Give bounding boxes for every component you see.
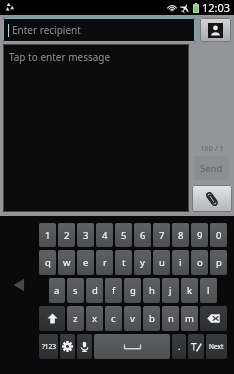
button[interactable]: h [143, 278, 160, 303]
staticText: s [73, 284, 78, 297]
button[interactable]: s [67, 278, 84, 303]
staticText: 1 [45, 229, 51, 242]
button[interactable]: ?123 [39, 334, 58, 359]
button[interactable]: 6 [134, 223, 151, 247]
staticText: 4 [102, 229, 108, 242]
button[interactable]: l [200, 278, 217, 303]
button[interactable]: d [86, 278, 103, 303]
staticText: a [54, 284, 60, 297]
button[interactable]: c [105, 306, 122, 331]
button[interactable]: 0 [210, 223, 227, 247]
staticText: x [92, 312, 98, 325]
staticText: d [92, 284, 98, 297]
button[interactable]: Back [8, 274, 30, 296]
button[interactable]: Settings [60, 334, 75, 359]
staticText: f [112, 284, 116, 297]
staticText: k [187, 284, 193, 297]
staticText: . [178, 340, 181, 353]
staticText: 3 [83, 229, 89, 242]
button[interactable]: Delete [200, 306, 227, 331]
staticText: 6 [140, 229, 146, 242]
staticText: t [122, 256, 126, 269]
staticText: m [185, 312, 194, 325]
staticText: Next [209, 342, 224, 351]
button[interactable]: Tap to enter message [3, 44, 189, 212]
staticText: v [130, 312, 135, 325]
button[interactable]: Voice input [77, 334, 92, 359]
staticText: q [45, 256, 51, 269]
staticText: 9 [197, 229, 203, 242]
button[interactable]: 8 [172, 223, 189, 247]
button[interactable]: y [134, 250, 151, 275]
staticText: o [197, 256, 203, 269]
button[interactable]: f [105, 278, 122, 303]
staticText: c [111, 312, 116, 325]
button[interactable]: 2 [58, 223, 75, 247]
staticText: 2 [64, 229, 70, 242]
staticText: g [130, 284, 136, 297]
button[interactable]: j [162, 278, 179, 303]
staticText: i [179, 256, 182, 269]
staticText: 8 [178, 229, 184, 242]
staticText: r [103, 256, 107, 269]
staticText: 12:03 [202, 0, 231, 15]
button[interactable]: k [181, 278, 198, 303]
button[interactable]: 1 [39, 223, 56, 247]
button[interactable]: q [39, 250, 56, 275]
staticText: p [216, 256, 222, 269]
button[interactable]: u [153, 250, 170, 275]
button[interactable]: Change language [188, 334, 204, 359]
button[interactable]: a [49, 278, 65, 303]
button[interactable]: x [86, 306, 103, 331]
button[interactable]: 5 [115, 223, 132, 247]
button[interactable]: o [191, 250, 208, 275]
staticText: 0 [216, 229, 222, 242]
button[interactable]: w [58, 250, 75, 275]
button[interactable]: Attach [192, 185, 232, 212]
button[interactable]: Send [194, 156, 229, 180]
staticText: Enter recipient [12, 23, 81, 37]
staticText: w [63, 256, 71, 269]
staticText: y [140, 256, 145, 269]
staticText: j [169, 284, 172, 297]
button[interactable]: t [115, 250, 132, 275]
staticText: 160 / 1 [200, 143, 224, 153]
button[interactable]: 4 [96, 223, 113, 247]
button[interactable]: b [143, 306, 160, 331]
button[interactable]: Space [94, 334, 170, 359]
button[interactable]: p [210, 250, 227, 275]
staticText: l [207, 284, 210, 297]
staticText: 5 [121, 229, 127, 242]
button[interactable]: i [172, 250, 189, 275]
staticText: u [159, 256, 165, 269]
staticText: z [73, 312, 78, 325]
staticText: 7 [159, 229, 165, 242]
button[interactable]: 9 [191, 223, 208, 247]
staticText: Tap to enter message [9, 50, 111, 64]
staticText: n [168, 312, 174, 325]
staticText: e [83, 256, 89, 269]
button[interactable]: Next [206, 334, 227, 359]
button[interactable]: g [124, 278, 141, 303]
button[interactable]: Shift [39, 306, 65, 331]
staticText: b [149, 312, 155, 325]
button[interactable]: n [162, 306, 179, 331]
staticText: ?123 [42, 342, 56, 351]
button[interactable]: . [172, 334, 186, 359]
button[interactable]: 7 [153, 223, 170, 247]
button[interactable]: Pick contact [200, 18, 231, 42]
button[interactable]: m [181, 306, 198, 331]
button[interactable]: e [77, 250, 94, 275]
button[interactable]: v [124, 306, 141, 331]
staticText: h [149, 284, 155, 297]
button[interactable]: Enter recipient [3, 18, 195, 42]
button[interactable]: 3 [77, 223, 94, 247]
button[interactable]: r [96, 250, 113, 275]
button[interactable]: z [67, 306, 84, 331]
staticText: Send [200, 162, 223, 175]
